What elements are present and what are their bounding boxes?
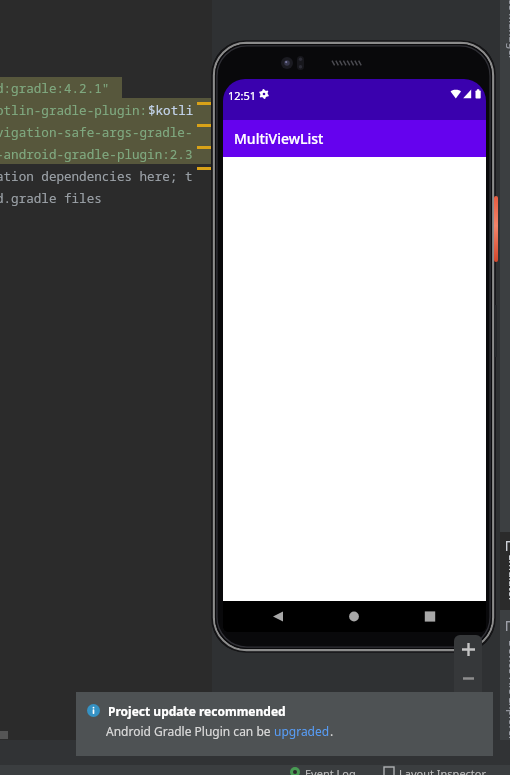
- button[interactable]: Zoom in: [454, 635, 482, 664]
- button[interactable]: Event Log: [290, 766, 356, 775]
- staticText: Layout Inspector: [399, 766, 487, 775]
- other: Settings: [259, 89, 269, 99]
- staticText: otlin-gradle-plugin:: [0, 102, 148, 119]
- button[interactable]: MultiViewList: [223, 120, 486, 157]
- staticText: ation dependencies here; t: [0, 168, 193, 185]
- button[interactable]: upgraded: [274, 723, 330, 739]
- staticText: -android-gradle-plugin:2.3: [0, 146, 193, 163]
- staticText: vigation-safe-args-gradle-: [0, 124, 193, 141]
- button[interactable]: Device Manager: [500, 0, 510, 60]
- staticText: MultiViewList: [234, 129, 324, 148]
- button[interactable]: Layout Inspector: [384, 766, 487, 775]
- staticText: Android Gradle Plugin can be: [106, 723, 274, 739]
- staticText: Event Log: [305, 766, 356, 775]
- button[interactable]: Emulator: [500, 532, 510, 610]
- staticText: 12:51: [228, 88, 257, 103]
- staticText: Project update recommended: [108, 703, 286, 719]
- button[interactable]: Zoom out: [454, 664, 482, 692]
- staticText: .: [330, 723, 334, 739]
- button[interactable]: Home: [330, 601, 378, 632]
- staticText: Device File Explorer: [506, 640, 510, 741]
- staticText: d:gradle:4.2.1": [0, 80, 110, 97]
- button[interactable]: Back: [254, 601, 302, 632]
- button[interactable]: Device File Explorer: [500, 612, 510, 762]
- staticText: Device Manager: [505, 0, 510, 60]
- staticText: $kotli: [148, 102, 194, 119]
- staticText: d.gradle files: [0, 190, 102, 207]
- staticText: Emulator: [505, 554, 510, 602]
- button[interactable]: Recents: [406, 601, 454, 632]
